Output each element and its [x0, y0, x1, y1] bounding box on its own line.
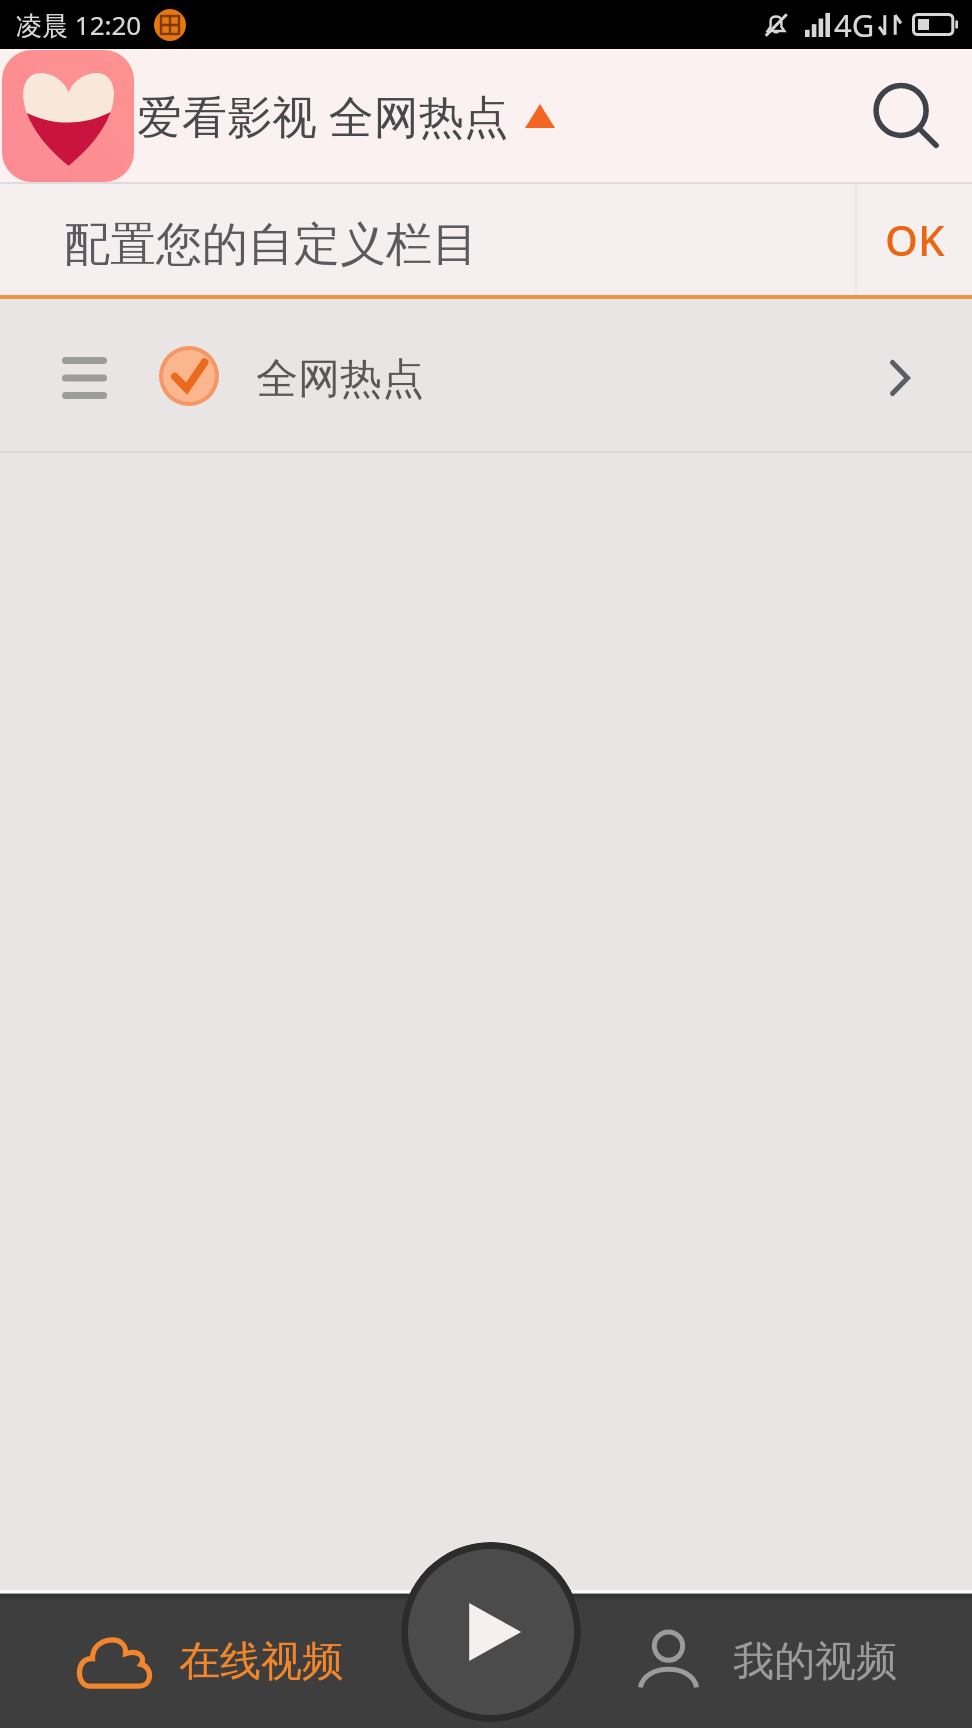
button[interactable]: Play [401, 1542, 581, 1722]
staticText: 4G [834, 4, 875, 46]
button[interactable]: OK [857, 184, 972, 295]
staticText: 我的视频 [733, 1636, 897, 1688]
staticText: 全网热点 [256, 353, 424, 406]
staticText: 在线视频 [179, 1636, 343, 1688]
staticText: 凌晨 12:20 [16, 7, 142, 43]
button[interactable]: Search [839, 49, 972, 182]
staticText: 爱看影视 全网热点 [137, 85, 509, 146]
button[interactable]: 全网热点 [0, 299, 972, 451]
staticText: 配置您的自定义栏目 [64, 216, 478, 274]
staticText: OK [885, 211, 945, 268]
button[interactable]: 我的视频 [572, 1594, 972, 1728]
button[interactable]: 在线视频 [0, 1594, 420, 1728]
